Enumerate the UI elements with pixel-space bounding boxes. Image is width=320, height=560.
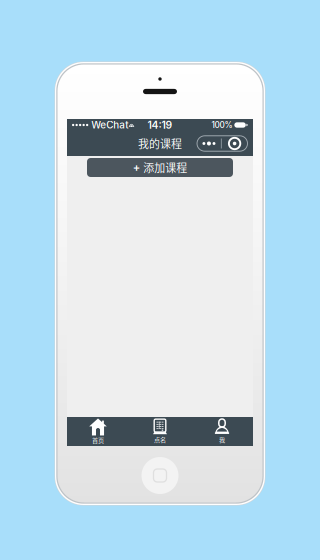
- button[interactable]: 首页: [67, 417, 129, 446]
- staticText: 我: [219, 435, 225, 444]
- staticText: 100%: [211, 120, 232, 130]
- staticText: 点名: [154, 435, 166, 444]
- button[interactable]: 我: [191, 417, 253, 446]
- staticText: 我的课程: [138, 136, 182, 151]
- staticText: 14:19: [147, 119, 172, 131]
- button[interactable]: More options and record: [197, 136, 247, 151]
- button[interactable]: +: [87, 158, 233, 177]
- staticText: +: [133, 161, 141, 174]
- staticText: 添加课程: [143, 160, 187, 175]
- button[interactable]: 点名: [129, 417, 191, 446]
- staticText: 首页: [92, 436, 104, 444]
- staticText: WeChat: [88, 119, 128, 131]
